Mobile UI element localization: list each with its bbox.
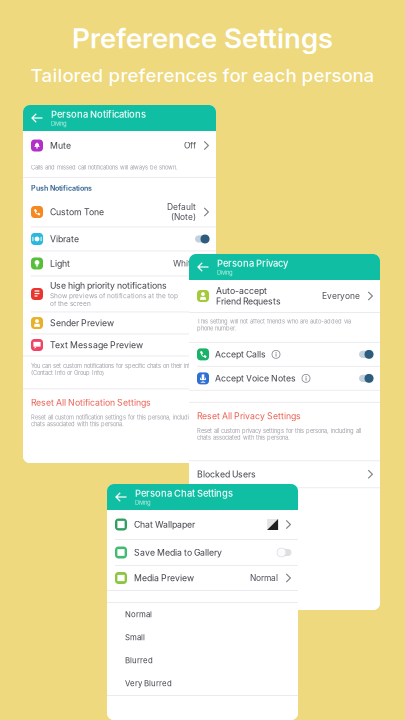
button[interactable]: Small	[107, 626, 298, 649]
staticText: Sender Preview	[50, 318, 114, 328]
staticText: Show previews of notifications at the to…	[50, 292, 178, 307]
button[interactable]: Blocked Users	[189, 461, 380, 487]
staticText: Persona Chat Settings	[135, 488, 233, 499]
staticText: Vibrate	[50, 234, 79, 244]
staticText: Everyone	[322, 291, 360, 301]
staticText: Push Notifications	[31, 184, 92, 192]
staticText: Diving	[135, 499, 151, 506]
staticText: Blurred	[125, 656, 153, 665]
staticText: Very Blurred	[125, 679, 172, 688]
staticText: Normal	[250, 573, 278, 583]
staticText: Save Media to Gallery	[134, 547, 222, 558]
staticText: Chat Wallpaper	[134, 519, 195, 530]
staticText: Text Message Preview	[50, 340, 143, 350]
staticText: Normal	[125, 610, 152, 619]
staticText: Calls and missed call notifications will…	[31, 164, 178, 171]
staticText: Reset All Notification Settings	[31, 397, 151, 408]
button[interactable]: Vibrate	[23, 227, 216, 250]
button[interactable]: Chat Wallpaper	[107, 510, 298, 539]
button[interactable]: Media Preview	[107, 566, 298, 590]
staticText: (Note)	[171, 212, 196, 222]
staticText: Auto-accept Friend Requests	[216, 285, 281, 306]
staticText: Small	[125, 633, 145, 642]
staticText: This setting will not affect friends who…	[197, 318, 351, 332]
staticText: Persona Privacy	[217, 258, 288, 269]
button[interactable]: Mute	[23, 131, 216, 160]
staticText: Default	[167, 202, 196, 212]
button[interactable]: Accept Calls	[189, 343, 380, 366]
staticText: Accept Voice Notes	[215, 373, 296, 384]
staticText: Blocked Users	[197, 469, 256, 479]
button[interactable]: Use high priority notifications	[23, 276, 216, 311]
button[interactable]: Custom Tone	[23, 197, 216, 226]
staticText: Tailored preferences for each persona	[30, 64, 374, 86]
staticText: Diving	[51, 120, 67, 127]
staticText: Reset all custom notification settings f…	[31, 414, 203, 428]
button[interactable]: Light	[23, 251, 216, 275]
button[interactable]: Back	[23, 105, 51, 131]
staticText: Accept Calls	[215, 349, 266, 360]
staticText: Off	[184, 140, 196, 151]
staticText: Mute	[50, 140, 71, 151]
staticText: Light	[50, 258, 70, 269]
button[interactable]: Reset All Privacy Settings	[189, 403, 380, 427]
button[interactable]: Sender Preview	[23, 312, 216, 333]
staticText: Diving	[217, 269, 233, 276]
button[interactable]: Reset All Notification Settings	[23, 389, 216, 414]
staticText: Use high priority notifications	[50, 280, 167, 291]
button[interactable]: Blurred	[107, 649, 298, 672]
staticText: Media Preview	[134, 573, 194, 583]
staticText: Preference Settings	[72, 21, 333, 55]
button[interactable]: Back	[107, 484, 135, 510]
staticText: You can set custom notifications for spe…	[31, 362, 209, 376]
staticText: Persona Notifications	[51, 109, 146, 120]
button[interactable]: Normal	[107, 603, 298, 626]
staticText: Reset all custom privacy settings for th…	[197, 427, 361, 441]
button[interactable]: Auto-accept Friend Requests	[189, 280, 380, 312]
button[interactable]: Back	[189, 254, 217, 280]
button[interactable]: Accept Voice Notes	[189, 367, 380, 390]
button[interactable]: Very Blurred	[107, 672, 298, 695]
staticText: Reset All Privacy Settings	[197, 411, 301, 421]
staticText: White	[173, 258, 196, 269]
button[interactable]: Save Media to Gallery	[107, 540, 298, 565]
button[interactable]: Text Message Preview	[23, 334, 216, 355]
staticText: Custom Tone	[50, 207, 104, 217]
